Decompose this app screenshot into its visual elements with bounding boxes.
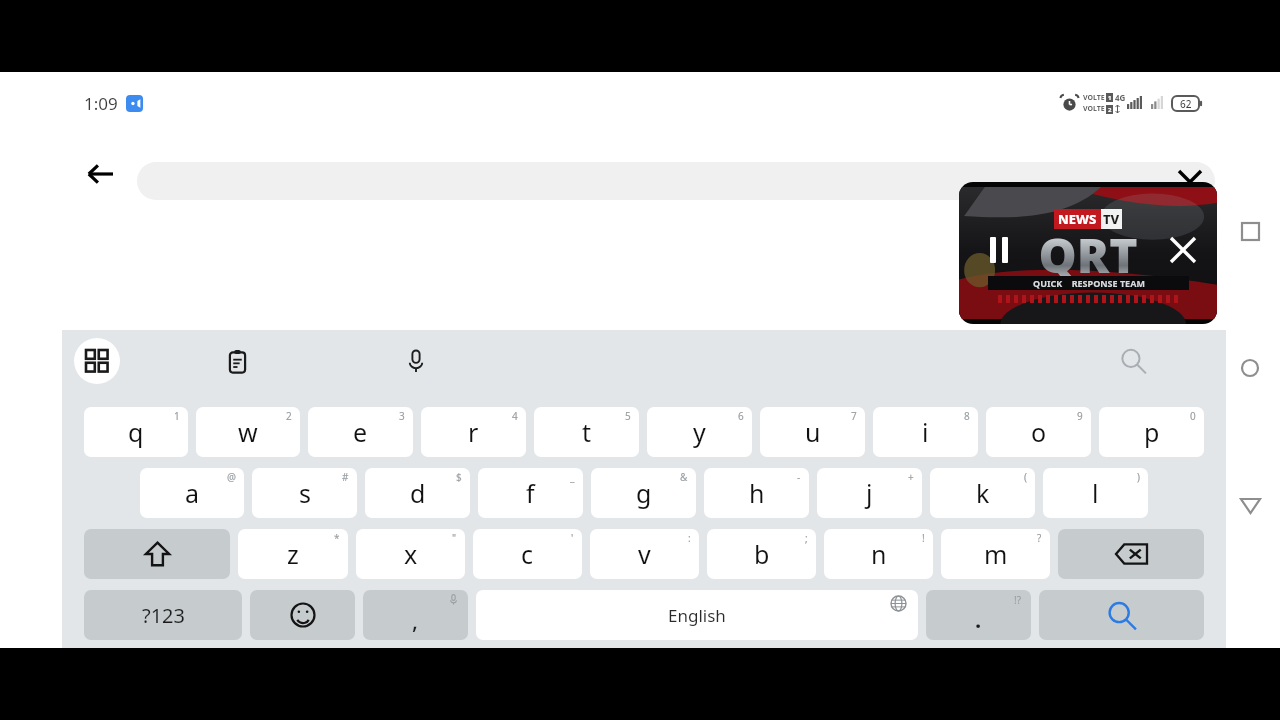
button[interactable]: h — [704, 468, 809, 518]
staticText: VOLTE — [1083, 93, 1105, 103]
button[interactable]: l — [1043, 468, 1148, 518]
staticText: p — [1144, 415, 1160, 449]
button[interactable]: Picture in picture video — [959, 182, 1217, 324]
staticText: ) — [1137, 470, 1140, 484]
button[interactable]: Backspace — [1058, 529, 1204, 579]
staticText: t — [582, 415, 592, 449]
button[interactable]: o — [986, 407, 1091, 457]
staticText: 2 — [1108, 106, 1112, 114]
staticText: o — [1031, 415, 1047, 449]
button[interactable]: q — [84, 407, 188, 457]
button[interactable]: m — [941, 529, 1050, 579]
staticText: * — [334, 531, 340, 545]
staticText: m — [984, 537, 1008, 571]
staticText: ( — [1024, 470, 1027, 484]
button[interactable]: i — [873, 407, 978, 457]
button[interactable]: Home — [1229, 347, 1271, 389]
button[interactable]: t — [534, 407, 639, 457]
button[interactable]: Pause — [977, 228, 1021, 272]
staticText: : — [688, 531, 691, 545]
button[interactable]: j — [817, 468, 922, 518]
button[interactable]: b — [707, 529, 816, 579]
staticText: ; — [805, 531, 808, 545]
staticText: l — [1092, 476, 1099, 510]
button[interactable]: s — [252, 468, 357, 518]
button[interactable]: Back — [1229, 484, 1271, 526]
staticText: v — [638, 537, 651, 571]
staticText: d — [410, 476, 426, 510]
staticText: h — [749, 476, 765, 510]
staticText: VOLTE — [1083, 104, 1105, 114]
staticText: x — [404, 537, 418, 571]
staticText: g — [636, 476, 652, 510]
staticText: 4 — [512, 409, 518, 423]
staticText: 1 — [174, 409, 180, 423]
staticText: , — [412, 605, 419, 635]
button[interactable]: Close picture in picture — [1161, 228, 1205, 272]
staticText: j — [866, 476, 873, 510]
staticText: + — [908, 470, 914, 484]
button[interactable]: Shift — [84, 529, 230, 579]
staticText: q — [128, 415, 144, 449]
staticText: 4G — [1115, 92, 1126, 103]
button[interactable]: Keyboard layouts — [74, 338, 120, 384]
button[interactable]: f — [478, 468, 583, 518]
button[interactable]: z — [238, 529, 348, 579]
button[interactable]: c — [473, 529, 582, 579]
button[interactable]: , — [363, 590, 468, 640]
staticText: 7 — [851, 409, 857, 423]
button[interactable]: v — [590, 529, 699, 579]
staticText: _ — [570, 470, 575, 484]
button[interactable]: Back — [76, 150, 124, 198]
button[interactable] — [137, 162, 1215, 200]
staticText: $ — [456, 470, 462, 484]
button[interactable]: g — [591, 468, 696, 518]
button[interactable]: k — [930, 468, 1035, 518]
staticText: i — [922, 415, 929, 449]
button[interactable]: w — [196, 407, 300, 457]
button[interactable]: Recents — [1229, 210, 1271, 252]
button[interactable]: Emoji — [250, 590, 355, 640]
staticText: 6 — [738, 409, 744, 423]
staticText: ?123 — [142, 602, 185, 629]
button[interactable]: . — [926, 590, 1031, 640]
button[interactable]: a — [140, 468, 244, 518]
button[interactable]: Voice input — [393, 338, 439, 384]
staticText: . — [975, 604, 982, 634]
staticText: s — [299, 476, 311, 510]
staticText: ! — [922, 531, 925, 545]
staticText: NEWS — [1058, 210, 1097, 228]
staticText: 62 — [1180, 97, 1192, 111]
button[interactable]: e — [308, 407, 413, 457]
staticText: TV — [1103, 210, 1120, 228]
button[interactable]: u — [760, 407, 865, 457]
staticText: k — [976, 476, 990, 510]
button[interactable]: p — [1099, 407, 1204, 457]
staticText: @ — [227, 470, 236, 484]
staticText: 8 — [964, 409, 970, 423]
staticText: w — [238, 415, 258, 449]
button[interactable]: English — [476, 590, 918, 640]
staticText: English — [668, 604, 726, 627]
staticText: QUICK RESPONSE TEAM — [1033, 277, 1145, 289]
staticText: f — [526, 476, 535, 510]
staticText: ? — [1037, 531, 1042, 545]
button[interactable]: y — [647, 407, 752, 457]
button[interactable]: r — [421, 407, 526, 457]
button[interactable]: Symbols — [84, 590, 242, 640]
button[interactable]: Search — [1110, 338, 1156, 384]
button[interactable]: Search — [1039, 590, 1204, 640]
staticText: - — [797, 470, 801, 484]
staticText: e — [353, 415, 368, 449]
button[interactable]: Clipboard — [214, 338, 260, 384]
button[interactable]: d — [365, 468, 470, 518]
staticText: QRT — [1038, 222, 1138, 287]
staticText: a — [185, 476, 200, 510]
staticText: y — [693, 415, 706, 449]
button[interactable]: n — [824, 529, 933, 579]
staticText: !? — [1014, 593, 1022, 607]
staticText: 0 — [1190, 409, 1196, 423]
button[interactable]: Clear — [1168, 160, 1212, 204]
staticText: b — [754, 537, 770, 571]
button[interactable]: x — [356, 529, 465, 579]
